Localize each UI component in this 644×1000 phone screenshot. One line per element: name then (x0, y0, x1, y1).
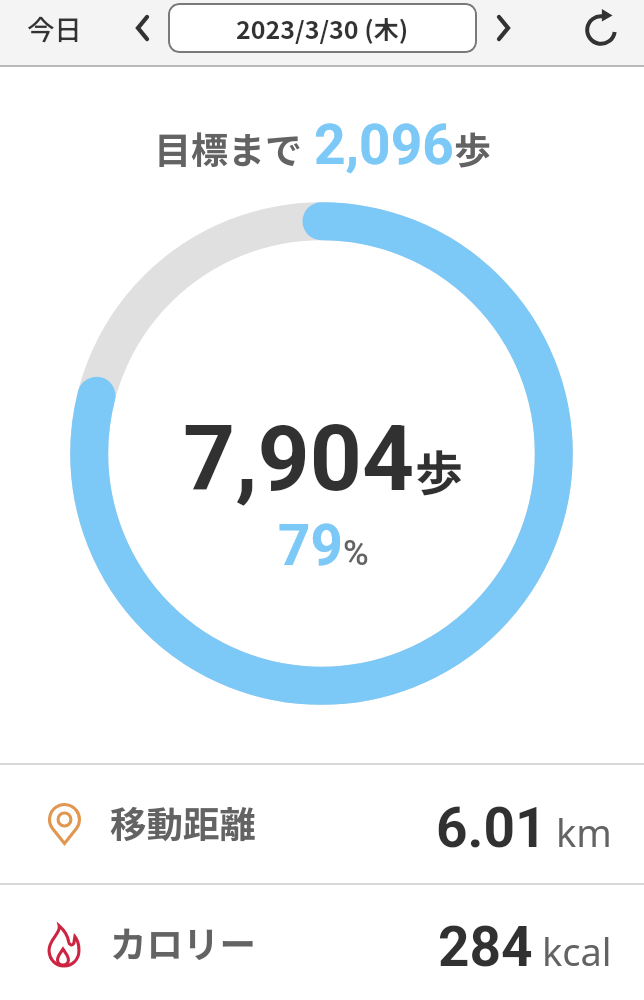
staticText: 目標まで (154, 121, 302, 175)
button[interactable]: カロリー (0, 885, 644, 1000)
staticText: 7,904 (183, 406, 415, 513)
button[interactable]: 移動距離 (0, 765, 644, 883)
staticText: 歩 (454, 121, 491, 175)
staticText: 284 (438, 915, 533, 979)
staticText: 2,096 (314, 113, 454, 177)
staticText: 6.01 (436, 796, 547, 860)
button[interactable]: 2023/3/30 (木) (168, 3, 477, 53)
staticText: 今日 (27, 8, 82, 48)
staticText: 歩 (415, 435, 464, 505)
staticText: kcal (542, 925, 612, 977)
button[interactable]: 今日 (12, 0, 97, 56)
staticText: % (343, 533, 369, 574)
staticText: 2023/3/30 (木) (236, 10, 409, 46)
button[interactable]: Previous day (119, 0, 165, 56)
staticText: 79 (278, 513, 343, 579)
button[interactable]: Next day (480, 0, 526, 56)
staticText: km (556, 806, 612, 858)
staticText: カロリー (110, 916, 256, 969)
button[interactable]: Refresh (573, 0, 629, 56)
staticText: 移動距離 (110, 796, 256, 849)
